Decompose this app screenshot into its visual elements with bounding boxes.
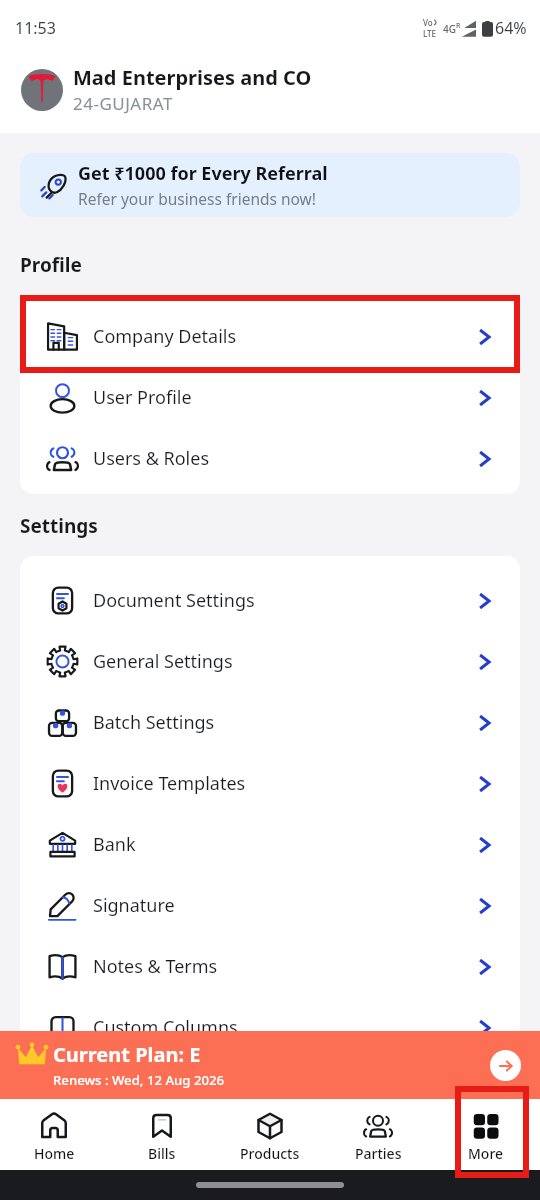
staticText: Signature <box>93 893 479 918</box>
staticText: Custom Columns <box>93 1015 479 1040</box>
button[interactable]: Company Details <box>20 306 520 367</box>
staticText: Batch Settings <box>93 710 479 735</box>
staticText: User Profile <box>93 385 479 410</box>
button[interactable]: Custom Columns <box>20 997 520 1058</box>
button[interactable]: Invoice Templates <box>20 753 520 814</box>
staticText: Profile <box>20 252 82 278</box>
button[interactable]: Parties <box>324 1099 432 1170</box>
staticText: R <box>456 21 461 31</box>
staticText: Mad Enterprises and CO <box>73 64 312 91</box>
staticText: Notes & Terms <box>93 954 479 979</box>
staticText: Home <box>34 1144 75 1163</box>
staticText: 11:53 <box>15 17 56 39</box>
staticText: Refer your business friends now! <box>78 188 316 209</box>
button[interactable]: Home <box>0 1099 108 1170</box>
button[interactable]: Current Plan: E <box>0 1031 540 1099</box>
button[interactable]: Open plan details <box>490 1050 521 1081</box>
staticText: 4G <box>443 22 456 36</box>
staticText: Document Settings <box>93 588 479 613</box>
button[interactable]: Document Settings <box>20 570 520 631</box>
button[interactable]: General Settings <box>20 631 520 692</box>
button[interactable]: Batch Settings <box>20 692 520 753</box>
button[interactable]: Get ₹1000 for Every Referral <box>20 153 520 217</box>
staticText: LTE <box>423 28 437 39</box>
staticText: Company Details <box>93 324 479 349</box>
staticText: Settings <box>20 513 98 539</box>
staticText: Bank <box>93 832 479 857</box>
staticText: More <box>468 1144 504 1163</box>
staticText: Invoice Templates <box>93 771 479 796</box>
button[interactable]: Signature <box>20 875 520 936</box>
button[interactable]: Bank <box>20 814 520 875</box>
staticText: Renews : Wed, 12 Aug 2026 <box>53 1071 225 1089</box>
staticText: Current Plan: E <box>53 1041 201 1068</box>
staticText: Parties <box>355 1144 402 1163</box>
button[interactable]: Users & Roles <box>20 428 520 489</box>
button[interactable]: Notes & Terms <box>20 936 520 997</box>
staticText: General Settings <box>93 649 479 674</box>
staticText: 64% <box>495 17 527 39</box>
button[interactable]: User Profile <box>20 367 520 428</box>
staticText: Users & Roles <box>93 446 479 471</box>
staticText: Bills <box>148 1144 176 1163</box>
staticText: Get ₹1000 for Every Referral <box>78 161 328 186</box>
button[interactable]: Bills <box>108 1099 216 1170</box>
button[interactable]: More <box>432 1099 540 1170</box>
staticText: Products <box>240 1144 300 1163</box>
staticText: 24-GUJARAT <box>73 92 173 115</box>
staticText: Vo <box>423 17 433 28</box>
button[interactable]: Products <box>216 1099 324 1170</box>
